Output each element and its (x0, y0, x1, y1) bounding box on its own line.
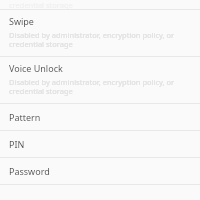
staticText: PIN (9, 138, 25, 150)
button[interactable]: PIN (0, 131, 200, 157)
button[interactable]: Swipe (0, 10, 200, 56)
button[interactable]: Pattern (0, 104, 200, 130)
staticText: Disabled by administrator, encryption po… (9, 77, 192, 97)
staticText: Password (9, 165, 50, 177)
staticText: Disabled by administrator, encryption po… (9, 30, 192, 50)
button[interactable]: Password (0, 158, 200, 184)
staticText: Voice Unlock (9, 62, 63, 74)
staticText: credential storage (9, 0, 73, 9)
staticText: Pattern (9, 111, 41, 123)
staticText: Swipe (9, 15, 34, 27)
button[interactable]: Voice Unlock (0, 57, 200, 103)
